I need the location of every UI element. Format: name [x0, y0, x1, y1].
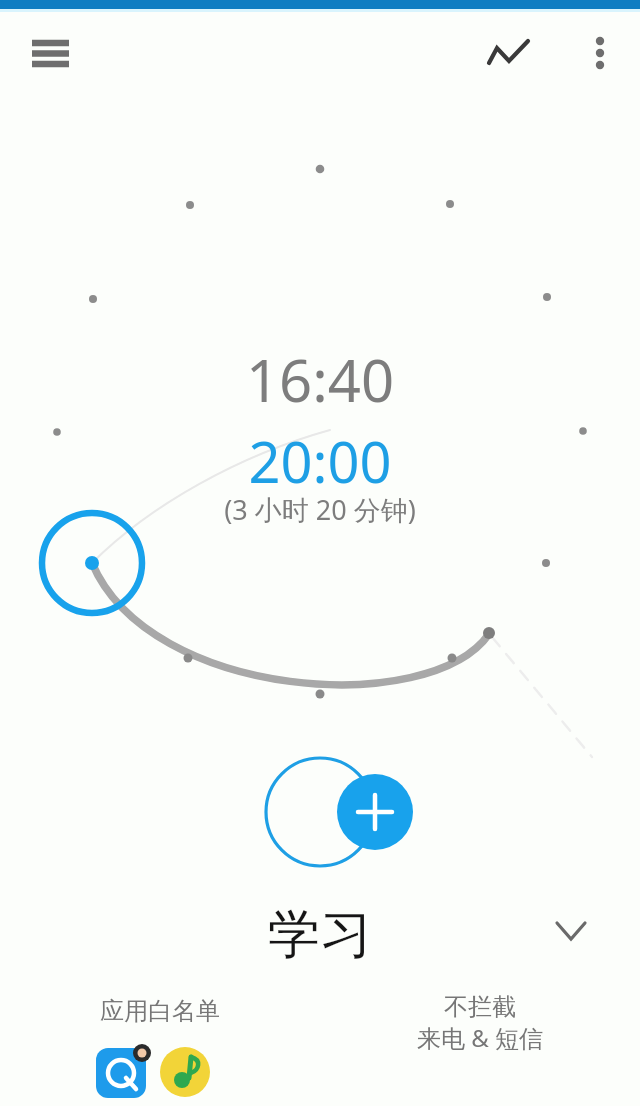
button[interactable]: Adjust start time: [36, 507, 148, 619]
button[interactable]: [248, 898, 392, 958]
button[interactable]: Menu: [16, 26, 84, 82]
button[interactable]: Start timer: [264, 756, 376, 868]
button[interactable]: Add: [337, 774, 413, 850]
button[interactable]: Statistics: [476, 24, 536, 82]
button[interactable]: [80, 988, 240, 1098]
button[interactable]: More options: [572, 24, 628, 82]
button[interactable]: [400, 984, 560, 1056]
button[interactable]: Expand: [543, 903, 599, 959]
